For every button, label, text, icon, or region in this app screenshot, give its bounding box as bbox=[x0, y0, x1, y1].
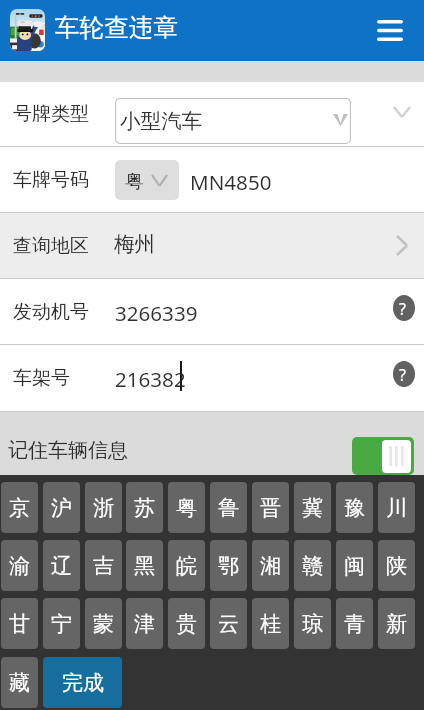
staticText: 粤 bbox=[125, 170, 144, 194]
staticText: 鲁 bbox=[218, 495, 239, 521]
staticText: 粤 bbox=[176, 495, 197, 521]
button[interactable]: 渝 bbox=[1, 540, 38, 591]
button[interactable]: 粤 bbox=[168, 482, 205, 533]
staticText: 京 bbox=[9, 495, 30, 521]
button[interactable]: 辽 bbox=[43, 540, 80, 591]
staticText: 藏 bbox=[9, 670, 30, 696]
button[interactable]: 蒙 bbox=[85, 598, 122, 649]
button[interactable]: Menu bbox=[368, 6, 412, 54]
staticText: 蒙 bbox=[93, 611, 114, 637]
staticText: ? bbox=[399, 364, 406, 386]
staticText: 津 bbox=[134, 611, 155, 637]
staticText: 车架号 bbox=[13, 366, 70, 390]
button[interactable]: 冀 bbox=[294, 482, 331, 533]
button[interactable]: 桂 bbox=[252, 598, 289, 649]
button[interactable]: 赣 bbox=[294, 540, 331, 591]
staticText: 皖 bbox=[176, 553, 197, 579]
button[interactable]: 藏 bbox=[1, 657, 38, 708]
button[interactable]: Help bbox=[393, 361, 415, 387]
button[interactable]: 苏 bbox=[126, 482, 163, 533]
button[interactable]: 鲁 bbox=[210, 482, 247, 533]
button[interactable]: Help bbox=[393, 295, 415, 321]
staticText: 鄂 bbox=[218, 553, 239, 579]
staticText: 216382 bbox=[115, 365, 186, 393]
staticText: 发动机号 bbox=[13, 300, 89, 324]
staticText: 沪 bbox=[51, 495, 72, 521]
button[interactable]: 皖 bbox=[168, 540, 205, 591]
button[interactable]: 甘 bbox=[1, 598, 38, 649]
button[interactable]: 沪 bbox=[43, 482, 80, 533]
button[interactable]: 湘 bbox=[252, 540, 289, 591]
button[interactable]: 闽 bbox=[336, 540, 373, 591]
button[interactable]: 完成 bbox=[43, 657, 122, 708]
staticText: 赣 bbox=[302, 553, 323, 579]
button[interactable]: 宁 bbox=[43, 598, 80, 649]
button[interactable]: 吉 bbox=[85, 540, 122, 591]
button[interactable]: 京 bbox=[1, 482, 38, 533]
staticText: 小型汽车 bbox=[120, 108, 203, 134]
staticText: 晋 bbox=[260, 495, 281, 521]
staticText: 浙 bbox=[93, 495, 114, 521]
button[interactable]: 津 bbox=[126, 598, 163, 649]
staticText: 青 bbox=[344, 611, 365, 637]
staticText: 吉 bbox=[93, 553, 114, 579]
staticText: 3266339 bbox=[115, 299, 198, 327]
button[interactable]: 川 bbox=[378, 482, 415, 533]
staticText: 贵 bbox=[176, 611, 197, 637]
staticText: 琼 bbox=[302, 611, 323, 637]
staticText: 查询地区 bbox=[13, 234, 89, 258]
staticText: MN4850 bbox=[190, 168, 272, 196]
staticText: 陕 bbox=[386, 553, 407, 579]
button[interactable]: 豫 bbox=[336, 482, 373, 533]
staticText: 闽 bbox=[344, 553, 365, 579]
staticText: ? bbox=[399, 298, 406, 320]
button[interactable]: 小型汽车 bbox=[115, 98, 351, 144]
staticText: 甘 bbox=[9, 611, 30, 637]
button[interactable]: Expand plate type bbox=[384, 90, 420, 134]
staticText: 完成 bbox=[62, 670, 104, 696]
button[interactable]: Choose region bbox=[383, 220, 421, 270]
staticText: 梅州 bbox=[114, 231, 156, 257]
button[interactable]: 新 bbox=[378, 598, 415, 649]
button[interactable]: 陕 bbox=[378, 540, 415, 591]
staticText: 黑 bbox=[134, 553, 155, 579]
staticText: 苏 bbox=[134, 495, 155, 521]
button[interactable]: 贵 bbox=[168, 598, 205, 649]
staticText: 辽 bbox=[51, 553, 72, 579]
button[interactable]: 云 bbox=[210, 598, 247, 649]
button[interactable]: App icon bbox=[10, 9, 45, 51]
staticText: 川 bbox=[386, 495, 407, 521]
button[interactable]: Province prefix bbox=[115, 160, 179, 200]
button[interactable]: 琼 bbox=[294, 598, 331, 649]
staticText: 渝 bbox=[9, 553, 30, 579]
staticText: 宁 bbox=[51, 611, 72, 637]
staticText: 豫 bbox=[344, 495, 365, 521]
staticText: 号牌类型 bbox=[13, 102, 89, 126]
staticText: 新 bbox=[386, 611, 407, 637]
staticText: 记住车辆信息 bbox=[8, 438, 128, 463]
staticText: 桂 bbox=[260, 611, 281, 637]
staticText: 车牌号码 bbox=[13, 168, 89, 192]
staticText: 湘 bbox=[260, 553, 281, 579]
staticText: 车轮查违章 bbox=[55, 12, 178, 43]
button[interactable]: 鄂 bbox=[210, 540, 247, 591]
button[interactable]: 青 bbox=[336, 598, 373, 649]
staticText: 冀 bbox=[302, 495, 323, 521]
button[interactable]: Remember vehicle info bbox=[352, 437, 414, 475]
button[interactable]: 浙 bbox=[85, 482, 122, 533]
staticText: 云 bbox=[218, 611, 239, 637]
button[interactable]: 晋 bbox=[252, 482, 289, 533]
button[interactable]: 黑 bbox=[126, 540, 163, 591]
